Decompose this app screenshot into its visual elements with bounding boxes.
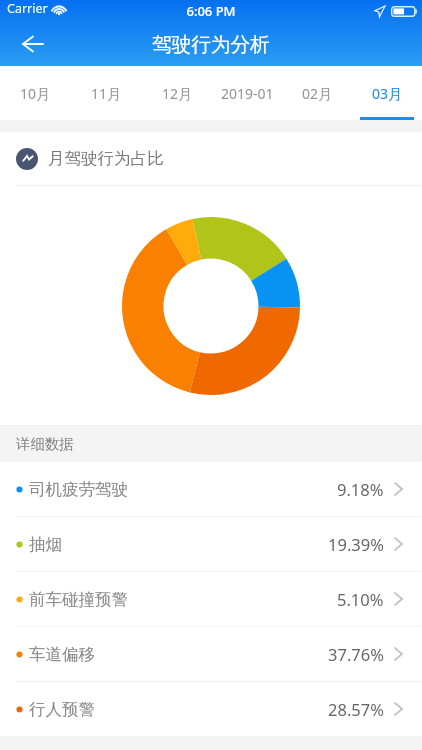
staticText: 28.57% [328,698,384,720]
staticText: 行人预警 [29,699,95,720]
button[interactable]: 2019-01 [212,66,282,120]
button[interactable]: 司机疲劳驾驶 [0,462,422,516]
button[interactable]: 11月 [71,66,142,120]
staticText: 抽烟 [29,534,62,555]
staticText: 月驾驶行为占比 [48,148,164,169]
staticText: 9.18% [337,478,384,500]
staticText: 03月 [372,84,403,103]
staticText: 前车碰撞预警 [29,589,128,610]
button[interactable]: 02月 [282,66,352,120]
staticText: 6:06 PM [186,2,236,20]
staticText: 车道偏移 [29,644,95,665]
staticText: 12月 [162,84,193,103]
staticText: 11月 [91,84,122,103]
staticText: 02月 [302,84,333,103]
staticText: 2019-01 [221,84,274,103]
staticText: Carrier [7,0,48,17]
button[interactable]: Back [10,22,54,66]
staticText: 37.76% [328,643,384,665]
staticText: 5.10% [337,588,384,610]
staticText: 详细数据 [16,435,74,453]
button[interactable]: 前车碰撞预警 [0,572,422,626]
staticText: 10月 [20,84,51,103]
button[interactable]: 车道偏移 [0,627,422,681]
button[interactable]: 10月 [0,66,71,120]
button[interactable]: 12月 [142,66,212,120]
staticText: 19.39% [328,533,384,555]
staticText: 司机疲劳驾驶 [29,479,128,500]
button[interactable]: 抽烟 [0,517,422,571]
staticText: 驾驶行为分析 [152,32,270,57]
button[interactable]: 行人预警 [0,682,422,736]
button[interactable]: 03月 [352,66,422,120]
